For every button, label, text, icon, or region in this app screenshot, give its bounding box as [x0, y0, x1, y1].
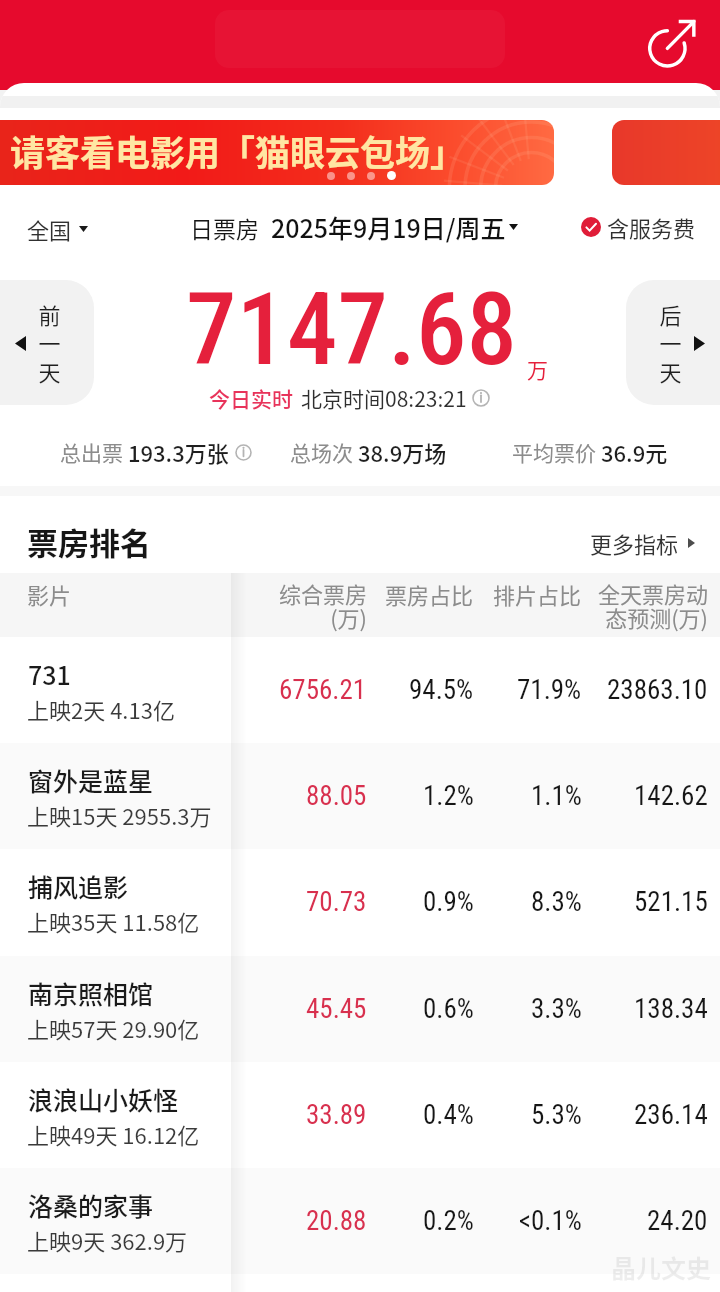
- button[interactable]: 浪浪山小妖怪: [0, 1062, 720, 1168]
- button[interactable]: 全国: [27, 213, 88, 245]
- staticText: 万: [527, 354, 548, 384]
- button[interactable]: 2025年9月19日/周五: [271, 209, 518, 245]
- staticText: 521.15: [634, 886, 708, 918]
- staticText: 北京时间08:23:21: [301, 383, 467, 413]
- staticText: 6756.21: [279, 674, 367, 706]
- staticText: 33.89: [306, 1099, 367, 1131]
- staticText: 全国: [27, 213, 72, 245]
- staticText: 1.1%: [531, 780, 582, 812]
- button[interactable]: 731: [0, 637, 720, 743]
- staticText: 8.3%: [531, 886, 582, 918]
- staticText: 7147.68: [186, 270, 518, 388]
- staticText: 3.3%: [531, 993, 582, 1025]
- staticText: 后 一 天: [659, 298, 682, 388]
- staticText: 23863.10: [607, 674, 708, 706]
- staticText: 2025年9月19日/周五: [271, 209, 506, 245]
- button[interactable]: 更多指标: [590, 527, 695, 559]
- staticText: 洛桑的家事: [28, 1187, 154, 1223]
- staticText: 731: [28, 656, 71, 692]
- staticText: 0.6%: [423, 993, 474, 1025]
- staticText: 更多指标: [590, 527, 679, 559]
- staticText: 总出票: [60, 437, 128, 467]
- staticText: 票房占比: [385, 578, 474, 610]
- staticText: 上映57天 29.90亿: [27, 1012, 200, 1044]
- staticText: 138.34: [634, 993, 708, 1025]
- staticText: 平均票价: [512, 437, 601, 467]
- staticText: 今日实时: [209, 383, 293, 413]
- button[interactable]: [612, 120, 720, 185]
- staticText: 5.3%: [531, 1099, 582, 1131]
- staticText: 38.9万场: [358, 436, 447, 468]
- staticText: 94.5%: [409, 674, 474, 706]
- staticText: 总场次: [290, 437, 358, 467]
- staticText: 排片占比: [493, 578, 582, 610]
- staticText: 捕风追影: [28, 868, 129, 904]
- staticText: 0.9%: [423, 886, 474, 918]
- staticText: 71.9%: [517, 674, 582, 706]
- staticText: 上映2天 4.13亿: [27, 693, 175, 725]
- staticText: 综合票房 (万): [278, 577, 367, 633]
- staticText: 票房排名: [27, 519, 151, 564]
- button[interactable]: 请客看电影用「猫眼云包场」: [0, 120, 554, 185]
- staticText: 含服务费: [607, 211, 696, 243]
- staticText: 0.2%: [423, 1205, 474, 1237]
- button[interactable]: 窗外是蓝星: [0, 743, 720, 849]
- button[interactable]: 捕风追影: [0, 849, 720, 955]
- button[interactable]: 洛桑的家事: [0, 1168, 720, 1274]
- staticText: 日票房: [190, 211, 259, 244]
- button[interactable]: 后 一 天: [626, 280, 720, 405]
- staticText: 上映35天 11.58亿: [27, 905, 200, 937]
- staticText: 窗外是蓝星: [28, 762, 154, 798]
- staticText: 45.45: [306, 993, 367, 1025]
- staticText: 142.62: [634, 780, 708, 812]
- staticText: 全天票房动 态预测(万): [597, 577, 708, 633]
- staticText: 70.73: [306, 886, 367, 918]
- button[interactable]: 含服务费: [581, 211, 696, 243]
- staticText: 88.05: [306, 780, 367, 812]
- button[interactable]: 前 一 天: [0, 280, 94, 405]
- staticText: 上映49天 16.12亿: [27, 1118, 200, 1150]
- staticText: 南京照相馆: [28, 975, 154, 1011]
- staticText: 236.14: [634, 1099, 708, 1131]
- staticText: 1.2%: [423, 780, 474, 812]
- staticText: 0.4%: [423, 1099, 474, 1131]
- staticText: 请客看电影用「猫眼云包场」: [10, 125, 466, 176]
- staticText: 晶儿文史: [611, 1249, 712, 1285]
- staticText: 上映9天 362.9万: [27, 1224, 188, 1256]
- button[interactable]: 南京照相馆: [0, 956, 720, 1062]
- staticText: 上映15天 2955.3万: [27, 799, 212, 831]
- staticText: <0.1%: [519, 1205, 582, 1237]
- staticText: 浪浪山小妖怪: [28, 1081, 179, 1117]
- staticText: 36.9元: [601, 436, 668, 468]
- staticText: 20.88: [306, 1205, 367, 1237]
- staticText: 影片: [27, 578, 72, 610]
- staticText: 193.3万张: [128, 436, 229, 468]
- button[interactable]: Share: [644, 14, 700, 70]
- staticText: 24.20: [647, 1205, 708, 1237]
- staticText: 前 一 天: [38, 298, 61, 388]
